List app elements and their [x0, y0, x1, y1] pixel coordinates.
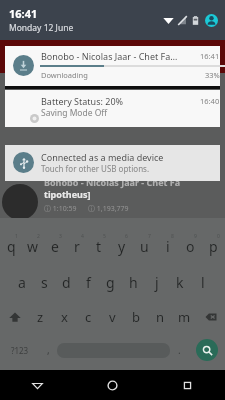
button[interactable]: 4 — [66, 230, 88, 266]
staticText: v — [109, 308, 116, 326]
button[interactable]: 6 — [110, 230, 133, 266]
button[interactable]: k — [168, 267, 191, 297]
staticText: 8 — [171, 233, 174, 240]
staticText: Saving Mode Off — [41, 107, 108, 119]
button[interactable]: Account — [205, 14, 218, 27]
staticText: k — [176, 273, 184, 292]
button[interactable]: 7 — [133, 230, 156, 266]
staticText: p — [209, 237, 218, 256]
staticText: 3 — [59, 233, 62, 240]
staticText: a — [18, 273, 26, 292]
button[interactable]: s — [33, 267, 55, 297]
staticText: 16:41 — [9, 6, 38, 21]
staticText: n — [156, 308, 165, 326]
button[interactable]: f — [77, 267, 99, 297]
staticText: g — [106, 273, 115, 292]
staticText: 16:40 — [200, 96, 220, 106]
staticText: ⓘ 1:10:59 — [44, 204, 77, 214]
staticText: Bonobo - Nicolas Jaar - Chet Fa — [44, 176, 181, 188]
button[interactable]: b — [124, 302, 148, 332]
button[interactable]: z — [29, 302, 52, 332]
staticText: h — [129, 273, 138, 292]
staticText: f — [86, 273, 91, 292]
staticText: Connected as a media device — [41, 151, 164, 163]
button[interactable]: Search — [189, 334, 225, 366]
staticText: Battery Status: 20% — [41, 95, 124, 107]
button[interactable]: h — [122, 267, 145, 297]
staticText: Monday 12 June — [9, 22, 74, 34]
button[interactable]: 8 — [156, 230, 179, 266]
staticText: y — [118, 237, 126, 256]
staticText: ⓘ 1,193,779 — [88, 204, 129, 214]
button[interactable]: n — [148, 302, 172, 332]
staticText: 2 — [37, 233, 40, 240]
button[interactable]: a — [11, 267, 33, 297]
button[interactable]: 9 — [179, 230, 202, 266]
button[interactable]: j — [145, 267, 168, 297]
button[interactable]: l — [191, 267, 214, 297]
button[interactable]: v — [100, 302, 124, 332]
staticText: tipotheus] — [44, 188, 91, 200]
staticText: 1 — [15, 233, 18, 240]
button[interactable]: m — [172, 302, 196, 332]
staticText: w — [27, 237, 39, 256]
staticText: l — [201, 273, 205, 292]
staticText: j — [155, 273, 159, 292]
staticText: z — [37, 308, 44, 326]
staticText: c — [85, 308, 92, 326]
button[interactable]: Home — [75, 370, 150, 400]
staticText: b — [132, 308, 140, 326]
button[interactable]: 1 — [0, 230, 22, 266]
button[interactable]: x — [52, 302, 76, 332]
staticText: ?123 — [11, 345, 29, 356]
button[interactable]: c — [76, 302, 100, 332]
button[interactable]: Back — [0, 370, 75, 400]
staticText: . — [178, 343, 181, 357]
button[interactable]: Backspace — [196, 302, 225, 332]
staticText: q — [7, 237, 16, 256]
staticText: i — [166, 237, 170, 256]
staticText: Touch for other USB options. — [41, 163, 150, 174]
staticText: r — [74, 237, 80, 256]
button[interactable]: Shift — [0, 302, 29, 332]
staticText: d — [62, 273, 71, 292]
button[interactable]: Connected as a media device — [5, 145, 220, 181]
button[interactable]: g — [99, 267, 122, 297]
button[interactable]: 3 — [44, 230, 66, 266]
button[interactable]: 0 — [202, 230, 225, 266]
staticText: 5 — [103, 233, 106, 240]
button[interactable]: Bonobo - Nicolas Jaar - Chet Fa… — [5, 46, 220, 89]
staticText: Bonobo - Nicolas Jaar - Chet Fa… — [41, 50, 181, 62]
staticText: u — [140, 237, 149, 256]
button[interactable]: Recents — [150, 370, 225, 400]
staticText: 16:41 — [200, 51, 220, 61]
staticText: Downloading — [41, 70, 88, 80]
staticText: 0 — [217, 233, 220, 240]
staticText: 4 — [81, 233, 84, 240]
staticText: m — [178, 308, 191, 326]
staticText: , — [47, 343, 50, 357]
staticText: 33% — [205, 70, 220, 80]
staticText: o — [186, 237, 195, 256]
staticText: 9 — [194, 233, 197, 240]
staticText: 6 — [125, 233, 128, 240]
staticText: s — [41, 273, 48, 292]
staticText: 7 — [148, 233, 151, 240]
staticText: e — [51, 237, 59, 256]
button[interactable]: Battery Status: 20% — [5, 90, 220, 127]
button[interactable]: d — [55, 267, 77, 297]
button[interactable]: ?123 — [0, 334, 40, 366]
staticText: x — [61, 308, 68, 326]
button[interactable]: 2 — [22, 230, 44, 266]
staticText: t — [96, 237, 102, 256]
button[interactable]: 5 — [88, 230, 110, 266]
